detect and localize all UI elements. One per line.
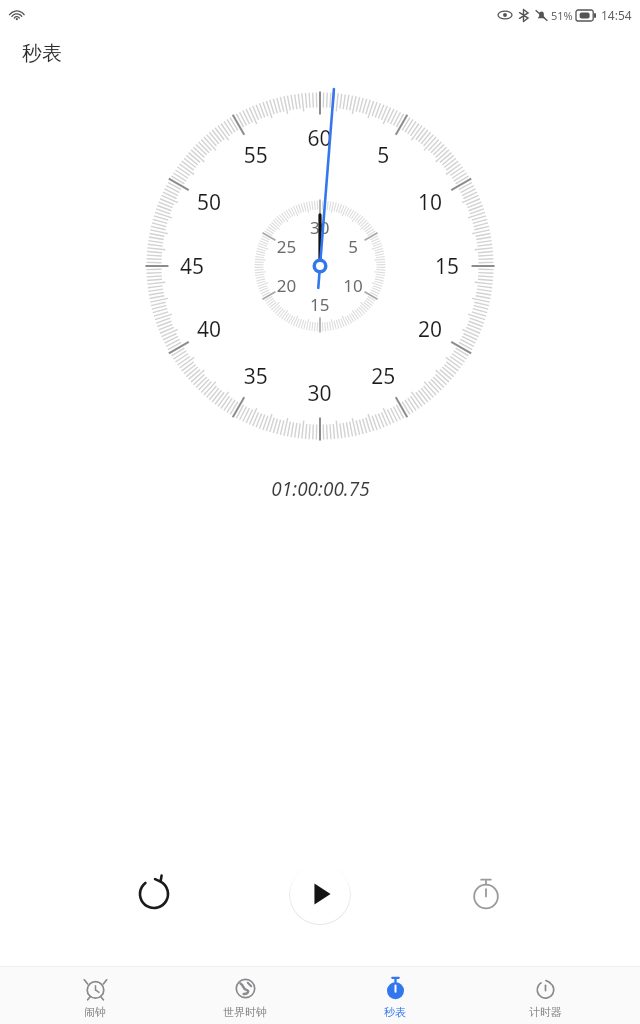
staticText: 秒表 xyxy=(384,1005,406,1019)
staticText: 计时器 xyxy=(529,1005,562,1019)
button[interactable]: 计时器 xyxy=(490,973,600,1019)
button[interactable]: 闹钟 xyxy=(40,973,150,1019)
button[interactable]: Lap xyxy=(460,868,512,920)
button[interactable]: 世界时钟 xyxy=(190,973,300,1019)
staticText: 世界时钟 xyxy=(223,1005,267,1019)
staticText: 14:54 xyxy=(601,7,632,23)
button[interactable]: Reset xyxy=(128,868,180,920)
staticText: 51% xyxy=(551,8,573,23)
staticText: 01:00:00.75 xyxy=(271,476,370,502)
button[interactable]: 秒表 xyxy=(340,973,450,1019)
staticText: 秒表 xyxy=(22,41,62,66)
staticText: 闹钟 xyxy=(84,1005,106,1019)
button[interactable]: Start xyxy=(289,863,351,925)
